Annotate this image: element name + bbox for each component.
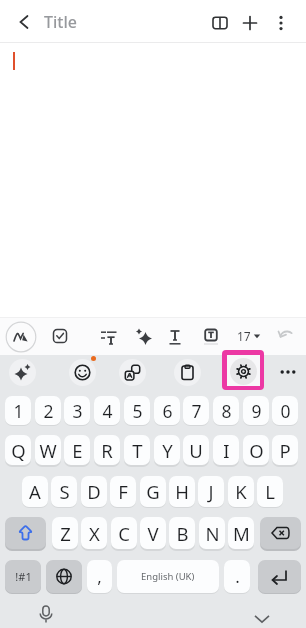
button[interactable]: T xyxy=(124,435,150,465)
button[interactable]: . xyxy=(224,560,250,593)
staticText: X xyxy=(89,521,100,546)
staticText: !#1 xyxy=(15,569,32,584)
button[interactable] xyxy=(164,326,186,348)
button[interactable]: G xyxy=(140,476,166,507)
button[interactable]: 1 xyxy=(5,396,31,425)
button[interactable] xyxy=(14,12,34,32)
button[interactable]: 6 xyxy=(154,396,180,425)
button[interactable]: Y xyxy=(154,435,180,465)
button[interactable]: Q xyxy=(5,435,31,465)
button[interactable]: 3 xyxy=(64,396,90,425)
button[interactable]: R xyxy=(94,435,120,465)
staticText: S xyxy=(59,479,70,504)
staticText: 4 xyxy=(102,399,113,423)
button[interactable]: Title xyxy=(44,10,114,34)
button[interactable] xyxy=(209,12,231,34)
button[interactable]: W xyxy=(35,435,61,465)
button[interactable]: 7 xyxy=(183,396,209,425)
button[interactable] xyxy=(49,325,71,347)
staticText: O xyxy=(249,438,264,463)
staticText: 17 xyxy=(237,328,251,344)
staticText: English (UK) xyxy=(141,570,195,583)
button[interactable]: H xyxy=(169,476,195,507)
button[interactable]: 4 xyxy=(94,396,120,425)
button[interactable]: A xyxy=(22,476,48,507)
button[interactable] xyxy=(271,13,291,33)
staticText: M xyxy=(233,521,250,546)
button[interactable]: D xyxy=(81,476,107,507)
button[interactable]: Z xyxy=(52,517,78,549)
button[interactable] xyxy=(200,324,222,346)
staticText: 5 xyxy=(132,399,143,423)
staticText: K xyxy=(235,479,247,504)
button[interactable] xyxy=(252,609,272,628)
button[interactable]: S xyxy=(51,476,77,507)
staticText: Z xyxy=(60,521,71,546)
button[interactable]: 17 xyxy=(232,327,256,345)
button[interactable]: C xyxy=(111,517,137,549)
staticText: D xyxy=(87,479,101,504)
button[interactable] xyxy=(46,560,82,593)
staticText: U xyxy=(189,438,203,463)
button[interactable] xyxy=(34,602,58,626)
button[interactable]: P xyxy=(272,435,298,465)
button[interactable]: L xyxy=(257,476,283,507)
staticText: I xyxy=(223,438,230,463)
button[interactable]: 9 xyxy=(243,396,269,425)
staticText: 0 xyxy=(280,399,291,423)
button[interactable] xyxy=(5,321,37,353)
button[interactable]: I xyxy=(213,435,239,465)
button[interactable] xyxy=(278,362,298,382)
button[interactable]: 2 xyxy=(35,396,61,425)
button[interactable]: B xyxy=(169,517,195,549)
staticText: P xyxy=(279,438,291,463)
button[interactable]: English (UK) xyxy=(117,560,219,593)
button[interactable]: K xyxy=(228,476,254,507)
staticText: E xyxy=(72,438,83,463)
button[interactable] xyxy=(239,12,261,34)
button[interactable]: M xyxy=(228,517,254,549)
button[interactable]: , xyxy=(87,560,112,593)
staticText: L xyxy=(265,479,275,504)
button[interactable] xyxy=(174,359,201,386)
button[interactable]: J xyxy=(198,476,224,507)
button[interactable] xyxy=(132,325,156,349)
staticText: R xyxy=(101,438,113,463)
button[interactable] xyxy=(9,359,36,386)
staticText: T xyxy=(132,438,143,463)
button[interactable] xyxy=(276,325,298,347)
button[interactable]: X xyxy=(81,517,107,549)
button[interactable] xyxy=(260,517,301,549)
button[interactable] xyxy=(230,358,257,385)
staticText: V xyxy=(147,521,159,546)
staticText: G xyxy=(146,479,160,504)
staticText: 6 xyxy=(162,399,173,423)
staticText: N xyxy=(205,521,220,546)
button[interactable] xyxy=(258,560,301,593)
button[interactable] xyxy=(119,359,146,386)
staticText: B xyxy=(176,521,189,546)
button[interactable] xyxy=(5,517,46,549)
button[interactable]: F xyxy=(110,476,136,507)
button[interactable]: 8 xyxy=(213,396,239,425)
staticText: A xyxy=(29,479,41,504)
staticText: 7 xyxy=(191,399,202,423)
staticText: J xyxy=(208,479,214,504)
button[interactable]: E xyxy=(64,435,90,465)
button[interactable]: 5 xyxy=(124,396,150,425)
button[interactable]: U xyxy=(183,435,209,465)
staticText: Q xyxy=(11,438,26,463)
button[interactable]: 0 xyxy=(272,396,298,425)
button[interactable] xyxy=(99,325,123,349)
button[interactable]: V xyxy=(140,517,166,549)
staticText: Y xyxy=(162,438,173,463)
button[interactable] xyxy=(69,359,96,386)
button[interactable]: N xyxy=(199,517,225,549)
staticText: 9 xyxy=(251,399,262,423)
button[interactable]: !#1 xyxy=(5,560,41,593)
staticText: 2 xyxy=(43,399,54,423)
button[interactable] xyxy=(251,330,263,342)
button[interactable]: O xyxy=(243,435,269,465)
staticText: F xyxy=(118,479,128,504)
staticText: Title xyxy=(44,11,77,33)
